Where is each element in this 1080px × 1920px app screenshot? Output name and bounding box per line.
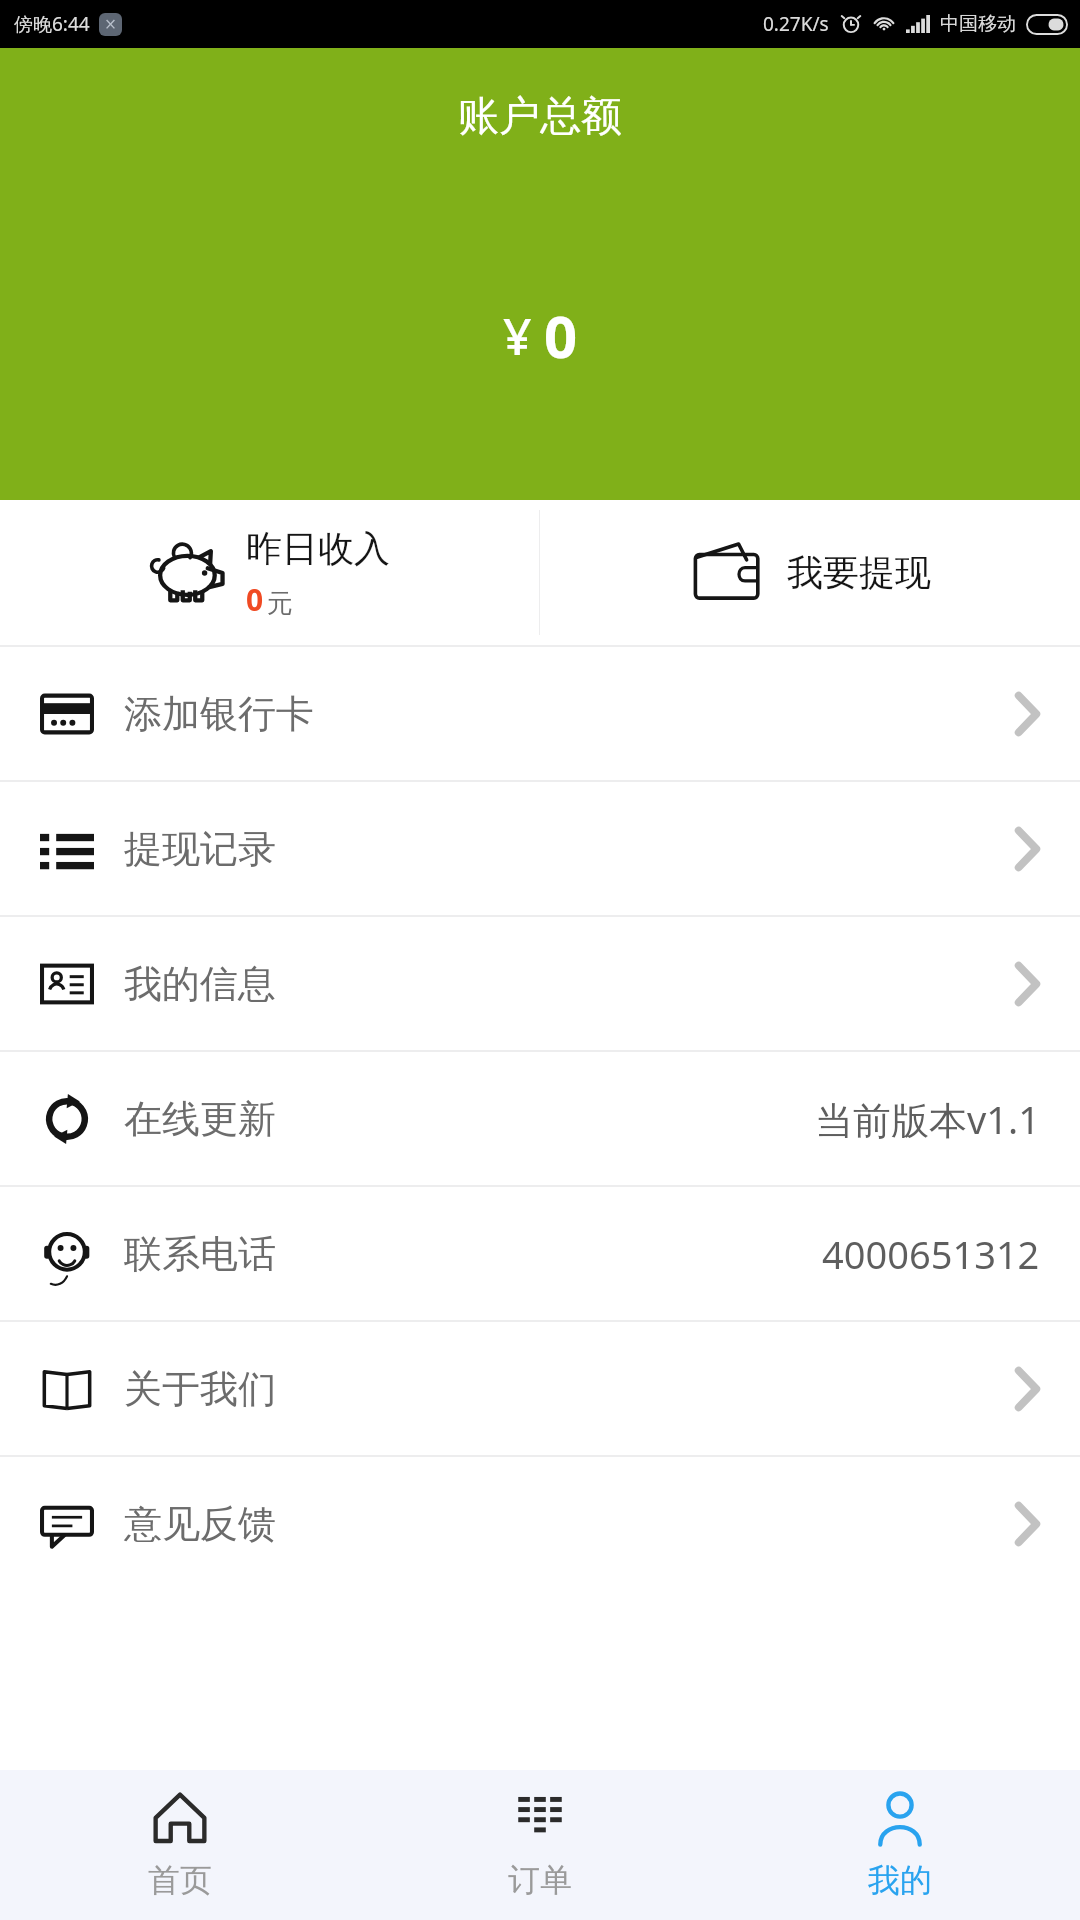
staticText: 0: [246, 579, 264, 620]
button[interactable]: 我的: [720, 1770, 1080, 1920]
staticText: 提现记录: [124, 825, 276, 873]
staticText: 0.27K/s: [763, 11, 829, 37]
button[interactable]: 添加银行卡: [0, 647, 1080, 780]
button[interactable]: 提现记录: [0, 782, 1080, 915]
staticText: 我的: [868, 1860, 932, 1900]
staticText: 添加银行卡: [124, 690, 314, 738]
staticText: 昨日收入: [246, 526, 390, 571]
staticText: 4000651312: [822, 1228, 1040, 1280]
button[interactable]: 首页: [0, 1770, 360, 1920]
staticText: 当前版本v1.1: [815, 1093, 1040, 1145]
staticText: 订单: [508, 1860, 572, 1900]
staticText: 关于我们: [124, 1365, 276, 1413]
staticText: 我的信息: [124, 960, 276, 1008]
staticText: ¥: [503, 302, 532, 370]
button[interactable]: 联系电话: [0, 1187, 1080, 1320]
staticText: 意见反馈: [124, 1500, 276, 1548]
staticText: 联系电话: [124, 1230, 276, 1278]
button[interactable]: 关于我们: [0, 1322, 1080, 1455]
staticText: 我要提现: [787, 550, 931, 595]
staticText: 首页: [148, 1860, 212, 1900]
button[interactable]: 意见反馈: [0, 1457, 1080, 1590]
button[interactable]: 昨日收入: [0, 500, 539, 645]
staticText: 傍晚6:44: [14, 11, 90, 37]
staticText: 账户总额: [458, 91, 622, 143]
button[interactable]: 在线更新: [0, 1052, 1080, 1185]
button[interactable]: 我的信息: [0, 917, 1080, 1050]
staticText: 中国移动: [940, 12, 1016, 36]
staticText: 元: [267, 587, 293, 620]
staticText: 0: [544, 296, 578, 375]
button[interactable]: 订单: [360, 1770, 720, 1920]
button[interactable]: 我要提现: [540, 500, 1080, 645]
staticText: 在线更新: [124, 1095, 276, 1143]
